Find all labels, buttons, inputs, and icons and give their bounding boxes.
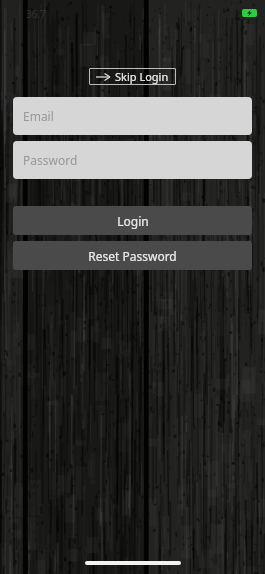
staticText: Password [23, 152, 78, 168]
staticText: Login [117, 213, 149, 229]
other: Battery charging [242, 9, 257, 17]
staticText: Skip Login [115, 69, 169, 84]
button[interactable]: Email [13, 97, 252, 135]
button[interactable]: Login [13, 206, 252, 235]
staticText: Email [23, 108, 54, 124]
button[interactable]: Reset Password [13, 241, 252, 270]
staticText: Reset Password [88, 248, 177, 264]
button[interactable]: Skip Login [89, 68, 176, 85]
button[interactable]: Password [13, 141, 252, 179]
staticText: 36.7 [26, 7, 46, 21]
